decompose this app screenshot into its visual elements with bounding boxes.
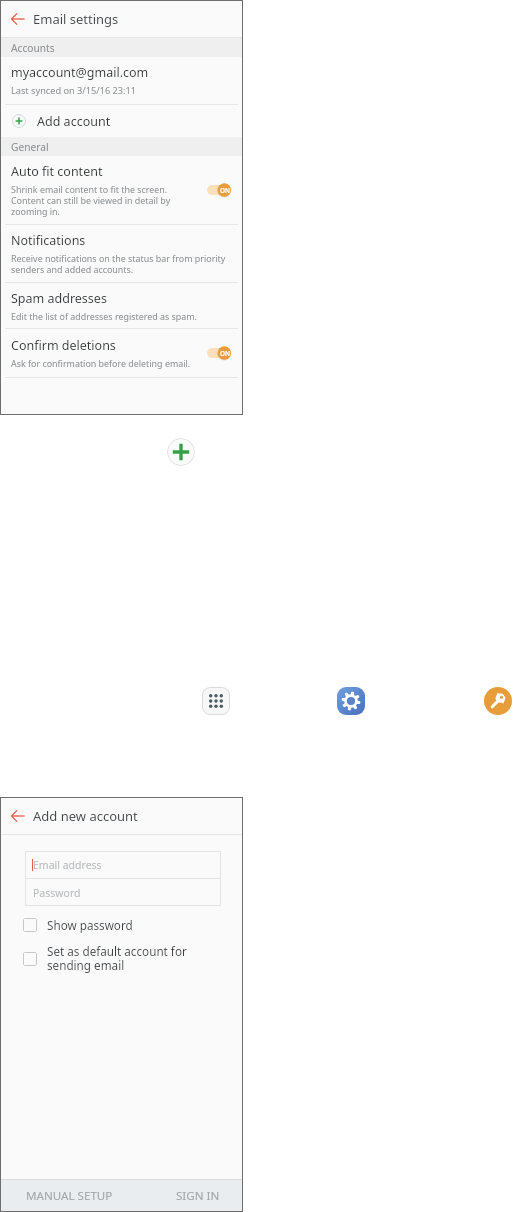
staticText: ON (220, 349, 230, 358)
staticText: Set as default account for sending email (47, 943, 187, 974)
button[interactable]: Settings (337, 687, 365, 715)
button[interactable]: SIGN IN (167, 1180, 229, 1212)
staticText: Shrink email content to fit the screen. … (11, 183, 171, 217)
staticText: myaccount@gmail.com (11, 64, 149, 81)
staticText: Show password (47, 917, 133, 933)
button[interactable]: Toggle Auto fit content (207, 183, 231, 197)
staticText: Ask for confirmation before deleting ema… (11, 357, 191, 369)
staticText: Add account (37, 113, 111, 130)
staticText: Spam addresses (11, 290, 107, 307)
staticText: MANUAL SETUP (26, 1188, 113, 1204)
staticText: Notifications (11, 232, 86, 249)
button[interactable]: Confirm deletions (0, 329, 243, 377)
button[interactable]: myaccount@gmail.com (0, 57, 243, 104)
button[interactable]: Email address (25, 851, 221, 878)
staticText: Confirm deletions (11, 337, 116, 354)
staticText: Auto fit content (11, 163, 103, 180)
button[interactable]: Spam addresses (0, 283, 243, 328)
staticText: Last synced on 3/15/16 23:11 (11, 84, 137, 97)
staticText: Add new account (33, 807, 138, 825)
staticText: Edit the list of addresses registered as… (11, 310, 197, 322)
staticText: Receive notifications on the status bar … (11, 252, 226, 275)
button[interactable]: Add account (167, 438, 195, 466)
button[interactable]: Add account (0, 105, 243, 137)
button[interactable]: Auto fit content (0, 156, 243, 224)
staticText: Email settings (33, 10, 119, 28)
staticText: SIGN IN (176, 1188, 220, 1204)
button[interactable]: Navigate up (0, 0, 37, 37)
button[interactable]: Password (25, 879, 221, 906)
button[interactable]: Toggle Confirm deletions (207, 346, 231, 360)
staticText: ON (220, 186, 230, 195)
staticText: Email address (33, 858, 102, 872)
button[interactable]: Notifications (0, 225, 243, 282)
button[interactable]: Set as default account for sending email (0, 943, 243, 974)
button[interactable]: Apps (202, 687, 230, 715)
button[interactable]: Navigate up (0, 797, 37, 834)
button[interactable]: Show password (0, 917, 243, 933)
staticText: Accounts (11, 41, 55, 55)
button[interactable]: Password (484, 687, 512, 715)
button[interactable]: MANUAL SETUP (18, 1180, 120, 1212)
staticText: General (11, 140, 49, 154)
staticText: Password (33, 886, 81, 900)
